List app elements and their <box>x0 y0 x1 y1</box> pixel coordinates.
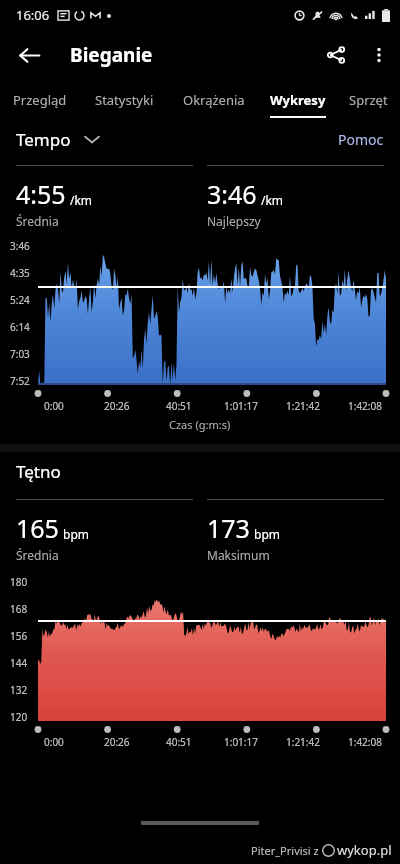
staticText: 7:52 <box>10 374 30 388</box>
staticText: bpm <box>254 526 280 542</box>
button[interactable]: 3:46 <box>207 165 384 229</box>
staticText: 40:51 <box>166 735 192 749</box>
staticText: 5:24 <box>10 293 30 307</box>
staticText: Maksimum <box>207 547 270 563</box>
staticText: 165 <box>16 511 59 545</box>
staticText: 20:26 <box>104 399 130 413</box>
staticText: Tętno <box>16 460 61 483</box>
button[interactable]: Share <box>314 33 358 77</box>
staticText: Najlepszy <box>207 213 261 229</box>
staticText: Pomoc <box>338 130 384 149</box>
staticText: Statystyki <box>95 91 154 109</box>
button[interactable]: 173 <box>207 499 384 563</box>
staticText: Przegląd <box>13 91 67 109</box>
staticText: Sprzęt <box>349 91 388 109</box>
staticText: 144 <box>10 656 28 670</box>
button[interactable]: Tempo <box>16 128 99 151</box>
staticText: 1:21:42 <box>286 735 320 749</box>
staticText: 6:14 <box>10 320 30 334</box>
button[interactable]: Statystyki <box>80 80 169 120</box>
staticText: 1:42:08 <box>348 735 382 749</box>
staticText: 132 <box>10 683 28 697</box>
staticText: 3:46 <box>207 177 257 211</box>
staticText: bpm <box>63 526 89 542</box>
staticText: 4:35 <box>10 266 30 280</box>
staticText: 40:51 <box>166 399 192 413</box>
staticText: Czas (g:m:s) <box>169 417 231 432</box>
staticText: 16:06 <box>16 6 50 24</box>
staticText: 173 <box>207 511 250 545</box>
staticText: 1:01:17 <box>224 399 258 413</box>
staticText: 4:55 <box>16 177 66 211</box>
button[interactable]: Wykresy <box>258 80 337 120</box>
staticText: Średnia <box>16 547 59 563</box>
staticText: 180 <box>10 575 28 589</box>
staticText: 0:00 <box>44 399 64 413</box>
button[interactable]: Sprzęt <box>337 80 400 120</box>
staticText: 1:21:42 <box>286 399 320 413</box>
staticText: /km <box>70 192 93 208</box>
staticText: Wykresy <box>270 91 326 109</box>
staticText: 1:01:17 <box>224 735 258 749</box>
button[interactable]: Przegląd <box>0 80 80 120</box>
staticText: 168 <box>10 602 28 616</box>
button[interactable]: 165 <box>16 499 193 563</box>
staticText: /km <box>261 192 284 208</box>
staticText: Bieganie <box>70 42 153 68</box>
staticText: Piter_Privisi z <box>251 843 322 858</box>
staticText: 1:42:08 <box>348 399 382 413</box>
staticText: Tempo <box>16 128 71 151</box>
staticText: wykop.pl <box>337 841 392 859</box>
staticText: 156 <box>10 629 28 643</box>
button[interactable]: More options <box>358 34 400 76</box>
staticText: 120 <box>10 710 28 724</box>
button[interactable]: 4:55 <box>16 165 193 229</box>
button[interactable]: Okrążenia <box>169 80 258 120</box>
button[interactable]: Back <box>8 34 50 76</box>
staticText: Średnia <box>16 213 59 229</box>
staticText: 7:03 <box>10 347 30 361</box>
button[interactable]: Tętno <box>16 460 384 483</box>
staticText: Okrążenia <box>183 91 245 109</box>
staticText: 0:00 <box>44 735 64 749</box>
staticText: 3:46 <box>10 239 30 253</box>
button[interactable]: Pomoc <box>338 130 384 149</box>
staticText: 20:26 <box>104 735 130 749</box>
